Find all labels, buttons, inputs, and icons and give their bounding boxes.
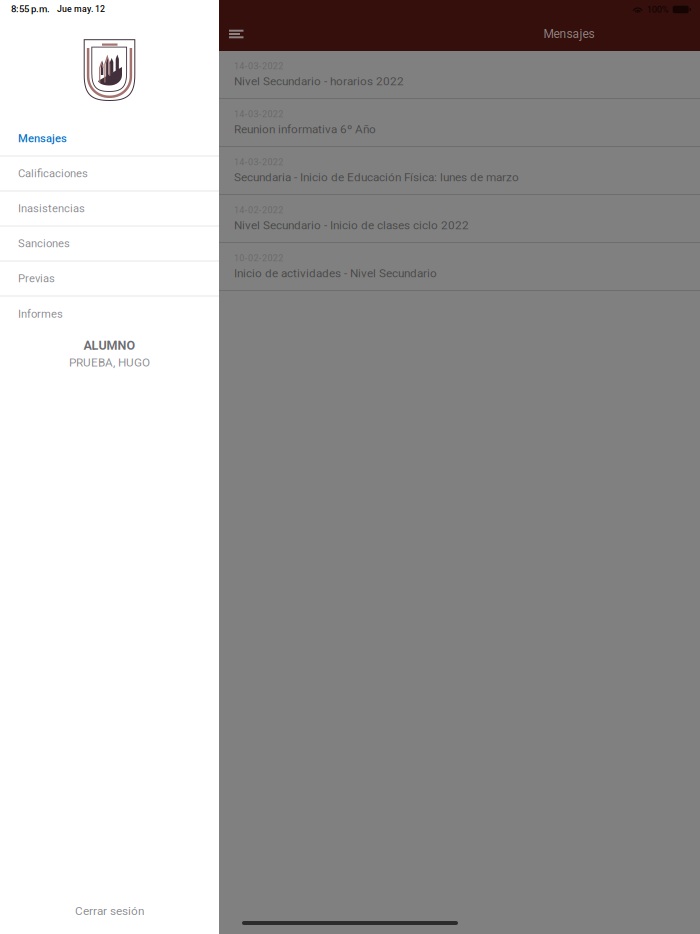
button[interactable]: 14-02-2022 <box>219 195 700 243</box>
button[interactable]: 10-02-2022 <box>219 243 700 291</box>
staticText: Cerrar sesión <box>75 904 144 918</box>
button[interactable]: Inasistencias <box>0 191 219 226</box>
button[interactable]: Abrir menú <box>219 22 263 46</box>
button[interactable]: 14-03-2022 <box>219 99 700 147</box>
staticText: Mensajes <box>18 132 67 145</box>
staticText: Secundaria - Inicio de Educación Física:… <box>234 170 519 184</box>
staticText: PRUEBA, HUGO <box>69 356 150 369</box>
staticText: Sanciones <box>18 237 70 250</box>
staticText: Nivel Secundario - Inicio de clases cicl… <box>234 218 469 232</box>
staticText: Informes <box>18 307 63 320</box>
staticText: Mensajes <box>543 27 594 41</box>
staticText: Previas <box>18 272 55 285</box>
staticText: 10-02-2022 <box>234 253 283 263</box>
button[interactable]: Previas <box>0 261 219 296</box>
button[interactable]: Calificaciones <box>0 156 219 191</box>
staticText: Reunion informativa 6º Año <box>234 122 376 136</box>
staticText: 14-02-2022 <box>234 205 283 215</box>
staticText: 14-03-2022 <box>234 157 283 167</box>
staticText: 8:55 p.m. <box>11 3 50 15</box>
staticText: ALUMNO <box>83 338 135 353</box>
staticText: Nivel Secundario - horarios 2022 <box>234 74 404 88</box>
button[interactable]: Informes <box>0 296 219 331</box>
staticText: Jue may. 12 <box>57 4 105 14</box>
button[interactable]: Mensajes <box>0 121 219 156</box>
staticText: 14-03-2022 <box>234 109 283 119</box>
button[interactable]: Cerrar sesión <box>0 896 219 926</box>
button[interactable]: 14-03-2022 <box>219 147 700 195</box>
staticText: Inicio de actividades - Nivel Secundario <box>234 266 437 280</box>
button[interactable]: Sanciones <box>0 226 219 261</box>
button[interactable]: 14-03-2022 <box>219 51 700 99</box>
staticText: 100% <box>647 4 669 15</box>
staticText: Calificaciones <box>18 167 88 180</box>
staticText: 14-03-2022 <box>234 61 283 71</box>
staticText: Inasistencias <box>18 202 85 215</box>
